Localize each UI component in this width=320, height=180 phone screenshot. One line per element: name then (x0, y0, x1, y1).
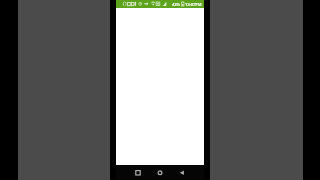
button[interactable]: Home (149, 165, 171, 180)
staticText: 12:07PM (185, 2, 202, 7)
button[interactable]: Back (171, 165, 193, 180)
button[interactable]: Recent apps (127, 165, 149, 180)
staticText: 42% (172, 2, 181, 7)
